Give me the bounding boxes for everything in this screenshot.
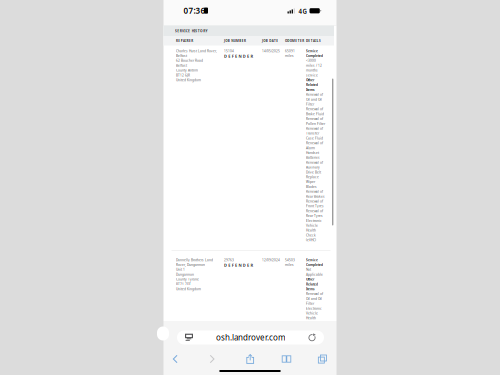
staticText: 29763 [224,258,234,262]
staticText: Renewal of [306,292,323,296]
staticText: Front Tyres [306,204,324,208]
staticText: Renewal of [306,107,323,111]
staticText: Vehicle [306,223,318,228]
staticText: Health [306,228,316,232]
staticText: D [243,54,246,59]
staticText: Brake Fluid [306,112,324,116]
staticText: Replace [306,175,319,179]
staticText: (eVHC) [306,238,316,242]
staticText: months [306,68,318,72]
staticText: Auxiliary [306,165,320,169]
staticText: Filter [306,102,314,106]
staticText: miles [285,54,294,58]
staticText: E [235,263,237,268]
staticText: E [228,263,230,268]
staticText: Belfast [176,54,187,58]
staticText: Rear Brakes [306,194,325,199]
staticText: D [243,263,246,268]
staticText: E [228,54,230,59]
staticText: N [238,263,241,268]
staticText: DETAILS [306,39,321,43]
staticText: Rover, Dungannon [176,263,205,267]
button[interactable]: Reload [305,330,319,344]
staticText: F [232,263,234,268]
staticText: Related [306,282,318,286]
button[interactable]: Bookmarks [274,351,298,367]
staticText: Completed [306,263,323,267]
staticText: Renewal of [306,189,323,194]
staticText: service [306,73,318,77]
staticText: SERVICE HISTORY [175,29,208,33]
staticText: Items [306,287,315,291]
staticText: Renewal of [306,141,323,145]
staticText: Oil and Oil [306,297,322,301]
staticText: N [238,54,241,59]
staticText: Other [306,277,314,281]
staticText: 4G [298,7,306,15]
staticText: E [235,54,237,59]
staticText: D [224,54,227,59]
staticText: miles [285,263,294,267]
staticText: Applicable [306,272,323,277]
button[interactable]: Share [238,351,262,367]
staticText: 07:36 [183,5,205,16]
staticText: Blades [306,185,317,189]
staticText: Drive Belt [306,170,321,174]
staticText: Electronic [306,306,322,311]
staticText: D [224,263,227,268]
staticText: Oil and Oil [306,97,322,102]
staticText: Related [306,83,318,87]
staticText: ODOMETER [285,39,304,43]
staticText: Not [306,267,311,272]
staticText: Vehicle [306,311,318,315]
staticText: 14/05/2025 [262,49,280,53]
staticText: 15104 [224,49,234,53]
staticText: E [247,263,249,268]
staticText: Other [306,78,314,82]
staticText: Filter [306,301,314,306]
staticText: Service [306,49,318,53]
staticText: Belfast [176,63,187,68]
staticText: 12/09/2024 [262,258,280,262]
button[interactable]: Forward [200,351,224,367]
staticText: Health [306,316,316,320]
staticText: Rear Tyres [306,214,323,218]
staticText: R [250,263,253,268]
staticText: County Antrim [176,68,198,72]
button[interactable]: Tabs [310,351,334,367]
staticText: R [250,54,253,59]
staticText: Dungannon [176,272,194,277]
staticText: Renewal of [306,209,323,213]
staticText: Service [306,258,318,262]
staticText: Renewal of [306,199,323,203]
staticText: 54503 [285,258,295,262]
staticText: Completed [306,54,323,58]
staticText: Batteries [306,155,320,160]
staticText: Electronic [306,218,322,223]
staticText: Renewal of [306,92,323,97]
button[interactable]: Back [163,351,187,367]
staticText: JOB DATE [262,39,278,43]
staticText: Pollen Filter [306,121,325,126]
staticText: Transfer [306,131,319,135]
staticText: E [247,54,249,59]
staticText: United Kingdom [176,78,201,82]
staticText: Items [306,88,315,92]
staticText: Renewal of [306,117,323,121]
staticText: BT71 7DT [176,282,191,286]
staticText: Check [306,233,316,237]
staticText: osh.landrover.com [216,332,285,343]
staticText: Donnelly Brothers Land [176,258,213,262]
staticText: Charles Hurst Land Rover, [176,49,217,53]
staticText: Wiper [306,180,315,184]
staticText: 65091 [285,49,295,53]
staticText: BT12 6JR [176,73,190,77]
staticText: Renewal of [306,126,323,131]
staticText: County Tyrone [176,277,199,281]
staticText: 62 Boucher Road [176,58,203,63]
staticText: F [232,54,234,59]
staticText: miles / 12 [306,63,322,68]
button[interactable]: Page settings [182,330,196,344]
